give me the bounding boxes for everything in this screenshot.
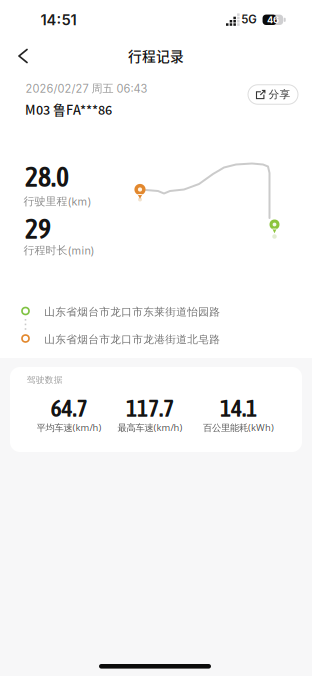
staticText: 29 — [25, 212, 51, 245]
staticText: 2026/02/27 周五 06:43 — [25, 81, 147, 95]
staticText: 14:51 — [40, 11, 76, 29]
staticText: 5G — [241, 12, 256, 26]
staticText: 山东省烟台市龙口市东莱街道怡园路 — [44, 305, 220, 319]
staticText: 百公里能耗(kWh) — [203, 421, 274, 434]
staticText: 行程时长(min) — [23, 243, 94, 257]
staticText: 46 — [267, 14, 279, 25]
staticText: 行驶里程(km) — [23, 194, 91, 208]
staticText: 分享 — [268, 88, 290, 101]
staticText: 28.0 — [25, 160, 69, 193]
staticText: 最高车速(km/h) — [117, 421, 182, 434]
staticText: 64.7 — [50, 394, 87, 422]
staticText: 平均车速(km/h) — [36, 421, 101, 434]
staticText: M03 鲁FA***86 — [25, 100, 112, 118]
staticText: 行程记录 — [128, 46, 184, 65]
staticText: 驾驶数据 — [27, 374, 63, 385]
button[interactable]: 分享 — [248, 85, 298, 104]
staticText: 山东省烟台市龙口市龙港街道北皂路 — [44, 333, 220, 346]
staticText: 117.7 — [126, 394, 174, 422]
button[interactable]: Back — [9, 39, 37, 72]
staticText: 14.1 — [220, 394, 257, 422]
